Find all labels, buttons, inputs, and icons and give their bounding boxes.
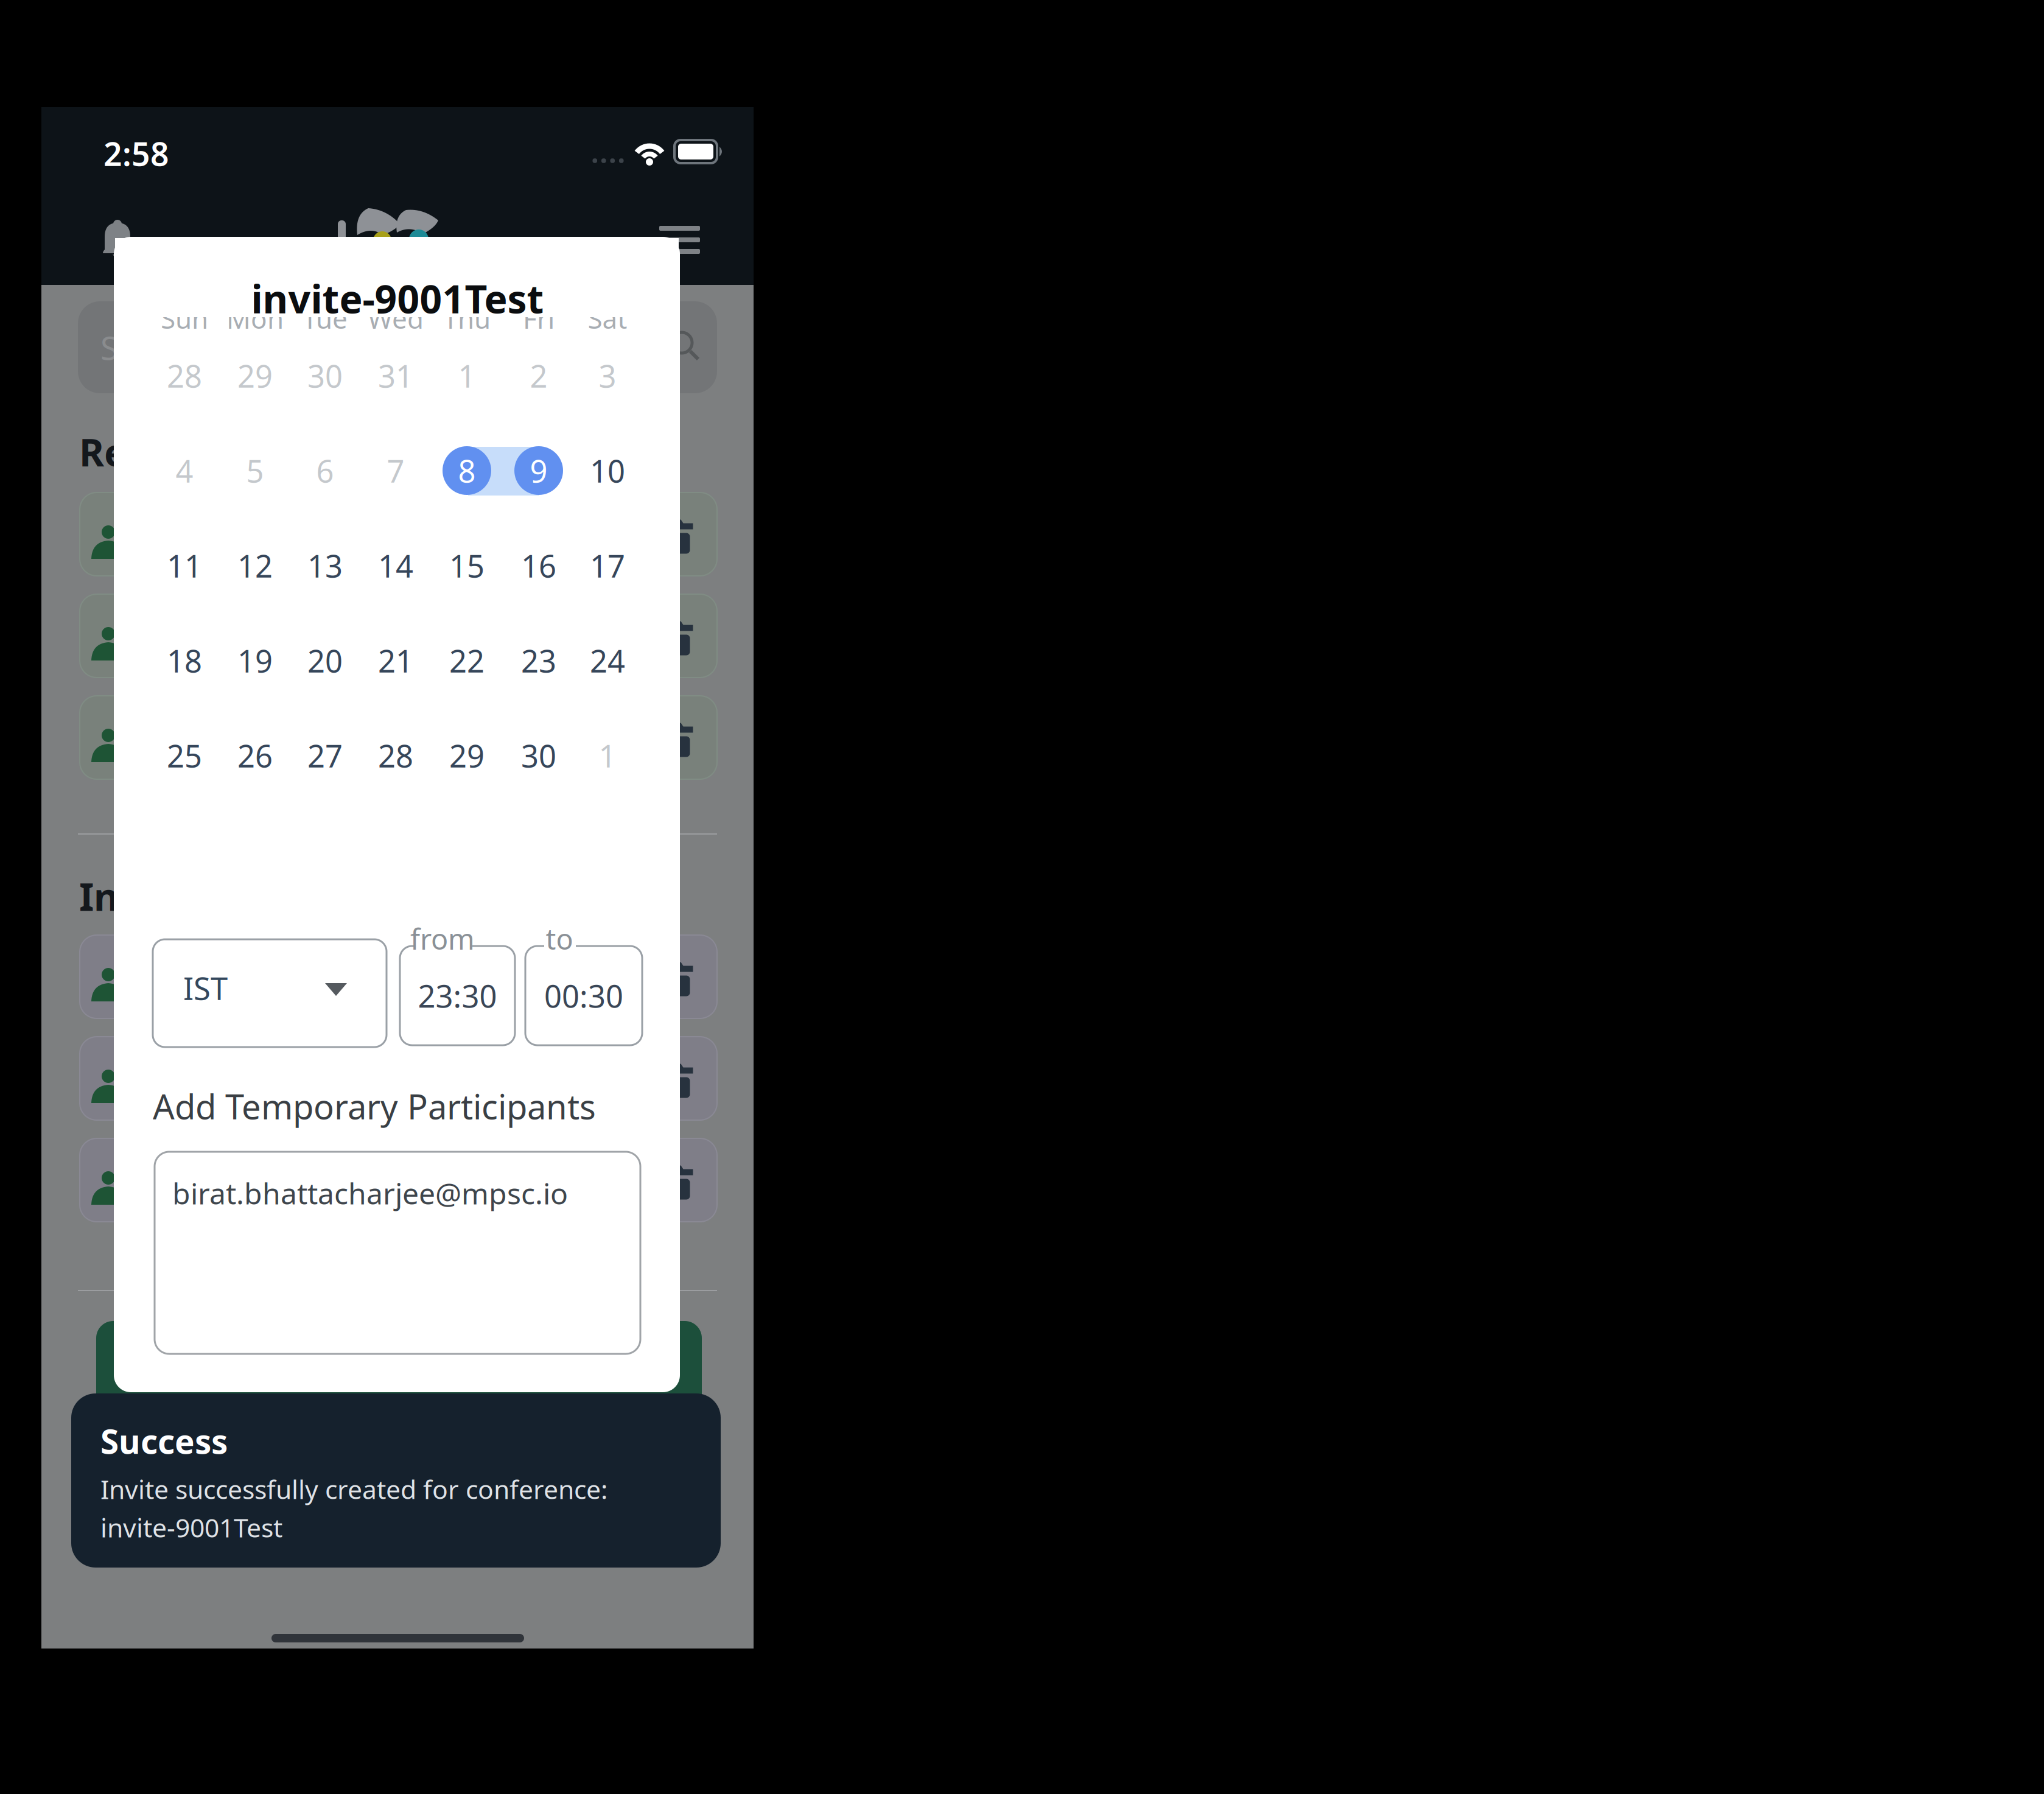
- button[interactable]: 20: [298, 633, 352, 688]
- button[interactable]: 29: [228, 348, 282, 403]
- button[interactable]: 30: [298, 348, 352, 403]
- button[interactable]: Create Invite: [96, 1321, 702, 1437]
- staticText: Invites: [79, 871, 210, 921]
- button[interactable]: Menu: [659, 226, 700, 254]
- button[interactable]: [80, 1138, 614, 1222]
- button[interactable]: 14: [368, 538, 423, 593]
- staticText: 12: [237, 545, 273, 586]
- button[interactable]: Timezone: [153, 939, 387, 1047]
- button[interactable]: 18: [157, 633, 212, 688]
- button[interactable]: Notifications: [99, 219, 136, 259]
- button[interactable]: Delete: [634, 492, 717, 576]
- staticText: Mon: [226, 301, 284, 336]
- staticText: 29: [237, 355, 273, 396]
- button[interactable]: 21: [368, 633, 423, 688]
- button[interactable]: 19: [228, 633, 282, 688]
- button[interactable]: Temporary participants: [155, 1152, 640, 1354]
- button[interactable]: 5: [228, 443, 282, 498]
- button[interactable]: 9: [511, 443, 566, 498]
- staticText: invite-9001Test: [251, 272, 544, 324]
- button[interactable]: Delete: [634, 935, 717, 1018]
- button[interactable]: From time: [400, 946, 515, 1045]
- staticText: 11: [167, 545, 202, 586]
- button[interactable]: 24: [580, 633, 635, 688]
- button[interactable]: 7: [368, 443, 423, 498]
- staticText: 30: [521, 735, 556, 776]
- button[interactable]: 16: [511, 538, 566, 593]
- button[interactable]: 1: [580, 728, 635, 783]
- button[interactable]: 4: [157, 443, 212, 498]
- button[interactable]: 28: [157, 348, 212, 403]
- staticText: 10: [590, 450, 625, 491]
- button[interactable]: [80, 696, 614, 779]
- staticText: 22: [449, 640, 485, 681]
- staticText: 18: [167, 640, 202, 681]
- button[interactable]: 12: [228, 538, 282, 593]
- button[interactable]: 3: [580, 348, 635, 403]
- button[interactable]: Delete: [634, 594, 717, 678]
- staticText: to: [546, 920, 573, 958]
- staticText: Recurring Invites: [79, 426, 407, 477]
- staticText: 1: [458, 355, 476, 396]
- staticText: 14: [378, 545, 413, 586]
- button[interactable]: 23: [511, 633, 566, 688]
- staticText: 1: [599, 735, 616, 776]
- staticText: 6: [316, 450, 334, 491]
- button[interactable]: 29: [439, 728, 494, 783]
- button[interactable]: 22: [439, 633, 494, 688]
- staticText: Sun: [161, 301, 208, 336]
- button[interactable]: Delete: [634, 1037, 717, 1120]
- button[interactable]: 8: [439, 443, 494, 498]
- staticText: Fri: [523, 301, 555, 336]
- staticText: Success: [100, 1419, 228, 1463]
- button[interactable]: Search: [78, 301, 717, 393]
- button[interactable]: 30: [511, 728, 566, 783]
- staticText: 30: [307, 355, 343, 396]
- button[interactable]: 17: [580, 538, 635, 593]
- button[interactable]: 26: [228, 728, 282, 783]
- button[interactable]: 1: [439, 348, 494, 403]
- button[interactable]: 25: [157, 728, 212, 783]
- staticText: 16: [521, 545, 556, 586]
- staticText: 7: [387, 450, 404, 491]
- button[interactable]: 13: [298, 538, 352, 593]
- button[interactable]: Delete: [634, 696, 717, 779]
- button[interactable]: [80, 492, 614, 576]
- staticText: Invite successfully created for conferen…: [100, 1472, 607, 1506]
- staticText: 23: [521, 640, 556, 681]
- staticText: 28: [167, 355, 202, 396]
- button[interactable]: 10: [580, 443, 635, 498]
- button[interactable]: [80, 594, 614, 678]
- button[interactable]: 6: [298, 443, 352, 498]
- staticText: Sat: [588, 301, 627, 336]
- staticText: 15: [449, 545, 485, 586]
- staticText: 24: [590, 640, 625, 681]
- button[interactable]: 31: [368, 348, 423, 403]
- staticText: 20: [307, 640, 343, 681]
- staticText: 28: [378, 735, 413, 776]
- staticText: 13: [307, 545, 343, 586]
- staticText: from: [410, 920, 475, 958]
- staticText: invite-9001Test: [100, 1510, 282, 1545]
- button[interactable]: [80, 935, 614, 1018]
- button[interactable]: To time: [525, 946, 642, 1045]
- staticText: 31: [378, 355, 413, 396]
- button[interactable]: 27: [298, 728, 352, 783]
- staticText: 5: [246, 450, 264, 491]
- staticText: Add Temporary Participants: [153, 1083, 596, 1129]
- button[interactable]: [80, 1037, 614, 1120]
- staticText: birat.bhattacharjee@mpsc.io: [172, 1174, 568, 1213]
- button[interactable]: 28: [368, 728, 423, 783]
- staticText: Tue: [303, 301, 348, 336]
- staticText: Wed: [368, 301, 424, 336]
- staticText: 23:30: [418, 975, 497, 1016]
- button[interactable]: 11: [157, 538, 212, 593]
- staticText: 19: [237, 640, 273, 681]
- staticText: 17: [590, 545, 625, 586]
- staticText: 00:30: [544, 975, 623, 1016]
- button[interactable]: 2: [511, 348, 566, 403]
- staticText: 27: [307, 735, 343, 776]
- button[interactable]: Delete: [634, 1138, 717, 1222]
- staticText: 2: [530, 355, 548, 396]
- button[interactable]: 15: [439, 538, 494, 593]
